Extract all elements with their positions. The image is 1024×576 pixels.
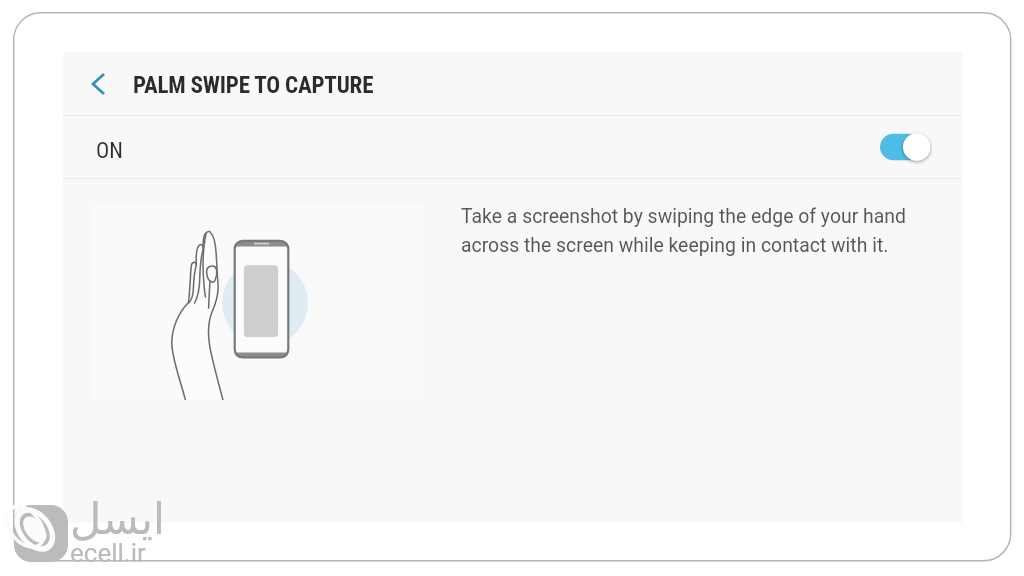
button[interactable]: Palm swipe to capture toggle, on xyxy=(870,127,938,167)
staticText: ایسل xyxy=(70,494,165,544)
staticText: ON xyxy=(96,138,123,164)
button[interactable]: ON xyxy=(63,116,962,178)
staticText: ecell.ir xyxy=(70,538,146,568)
staticText: PALM SWIPE TO CAPTURE xyxy=(133,72,374,99)
button[interactable]: Back xyxy=(63,52,133,115)
staticText: Take a screenshot by swiping the edge of… xyxy=(461,205,931,256)
